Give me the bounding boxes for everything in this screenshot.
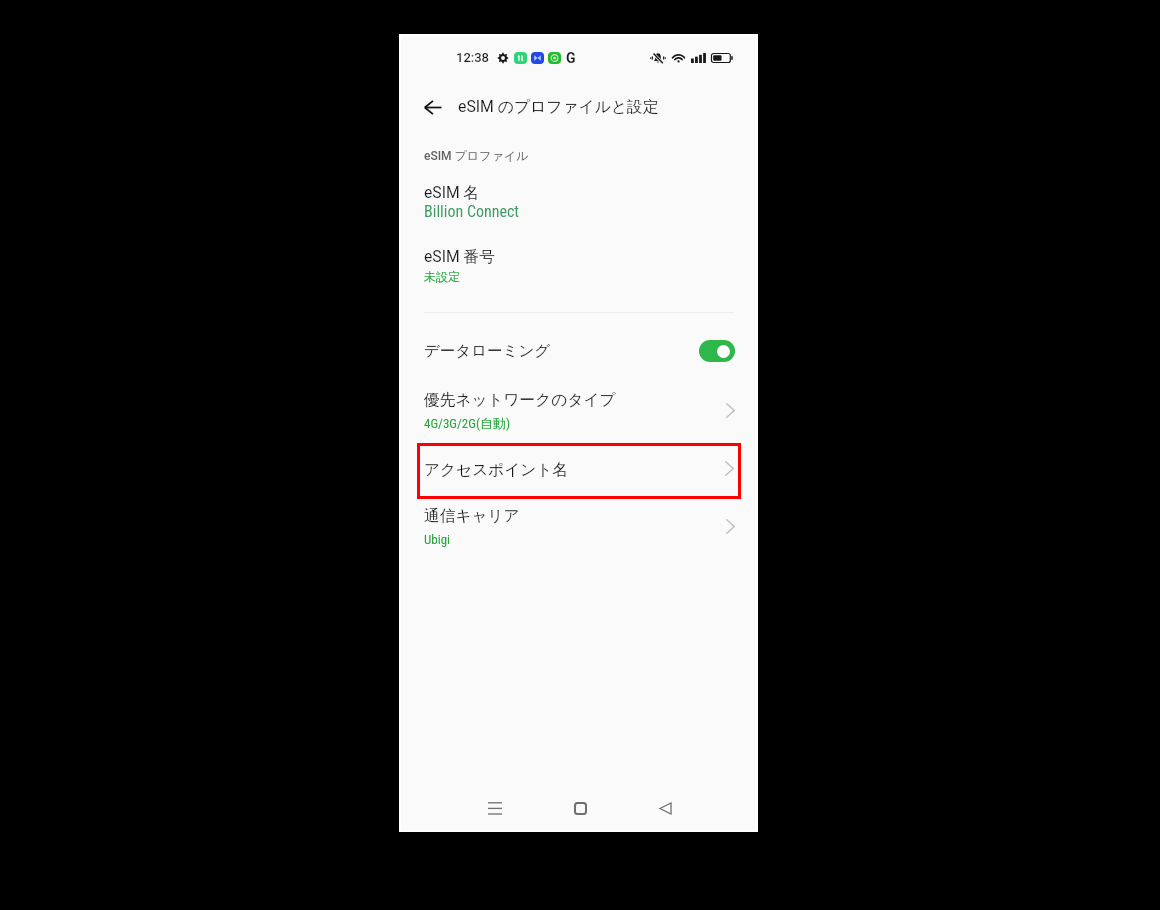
button[interactable]: Home bbox=[520, 782, 638, 830]
staticText: G bbox=[566, 50, 576, 66]
staticText: eSIM プロファイル bbox=[424, 148, 529, 163]
staticText: アクセスポイント名 bbox=[424, 460, 569, 480]
staticText: Ubigi bbox=[424, 532, 451, 547]
staticText: 4G/3G/2G(自動) bbox=[424, 415, 511, 431]
staticText: Billion Connect bbox=[424, 202, 520, 221]
staticText: eSIM 名 bbox=[424, 183, 480, 203]
button[interactable]: Back bbox=[638, 782, 756, 830]
staticText: 優先ネットワークのタイプ bbox=[424, 390, 616, 410]
button[interactable]: アクセスポイント名 bbox=[417, 443, 741, 499]
button[interactable]: eSIM 番号 bbox=[419, 241, 736, 293]
button[interactable]: Data roaming toggle bbox=[699, 340, 735, 362]
button[interactable]: Back bbox=[419, 93, 447, 121]
staticText: 12:38 bbox=[456, 50, 489, 65]
staticText: 未設定 bbox=[424, 269, 460, 284]
button[interactable]: 通信キャリア bbox=[419, 500, 736, 552]
button[interactable]: データローミング bbox=[424, 340, 735, 362]
button[interactable]: 優先ネットワークのタイプ bbox=[419, 384, 736, 436]
staticText: データローミング bbox=[424, 341, 699, 361]
button[interactable]: eSIM 名 bbox=[419, 177, 736, 229]
staticText: eSIM のプロファイルと設定 bbox=[458, 97, 659, 117]
button[interactable]: Recent apps bbox=[401, 782, 520, 830]
staticText: eSIM 番号 bbox=[424, 247, 495, 267]
staticText: 通信キャリア bbox=[424, 506, 520, 526]
